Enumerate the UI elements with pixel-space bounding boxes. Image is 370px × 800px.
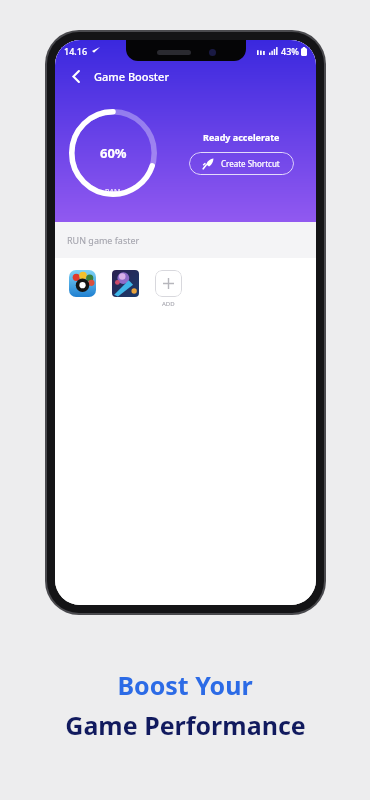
button[interactable]: Mobile Legends <box>112 270 139 297</box>
staticText: Game Performance <box>65 708 306 742</box>
staticText: Boost Your <box>117 668 253 702</box>
staticText: RUN game faster <box>67 234 140 246</box>
staticText: 14.16 <box>64 45 88 57</box>
button[interactable]: Back <box>65 65 87 87</box>
staticText: Ready accelerate <box>203 131 280 143</box>
button[interactable]: Create Shortcut <box>189 152 294 175</box>
button[interactable]: 8 Ball Pool <box>69 270 96 297</box>
staticText: Game Booster <box>94 69 170 84</box>
staticText: RAM <box>105 187 121 197</box>
staticText: Create Shortcut <box>221 158 280 169</box>
staticText: 60% <box>100 144 127 162</box>
staticText: 43% <box>281 45 299 57</box>
staticText: ADD <box>162 300 175 308</box>
button[interactable]: Add game <box>155 270 182 297</box>
